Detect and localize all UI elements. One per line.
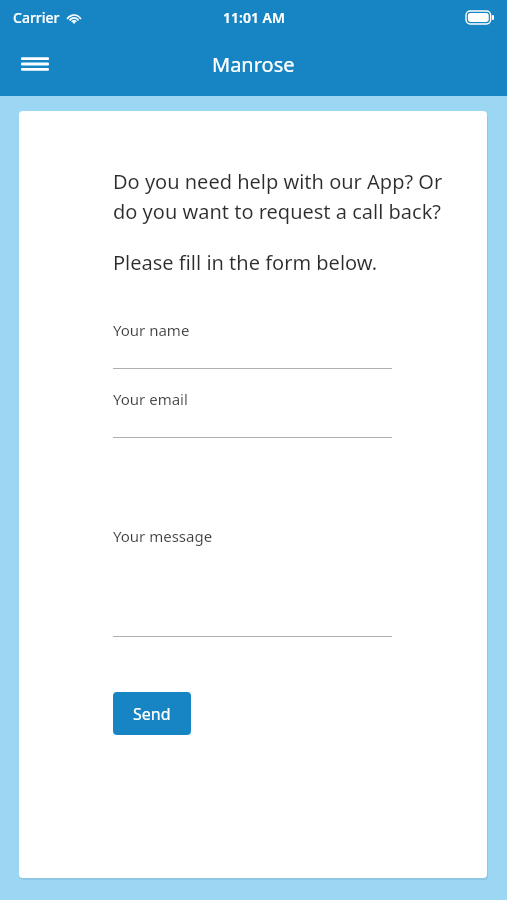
staticText: Your email [113,389,188,409]
staticText: Do you need help with our App? Or do you… [113,168,469,225]
button[interactable]: Your message [19,526,487,637]
staticText: Your message [113,526,213,546]
button[interactable]: Send [113,692,191,735]
staticText: Please fill in the form below. [113,249,378,276]
button[interactable]: Open navigation menu [12,41,58,87]
staticText: Carrier [13,8,60,27]
button[interactable]: Your name [19,320,487,369]
staticText: Manrose [212,51,295,78]
staticText: Send [133,703,171,725]
staticText: Your name [113,320,190,340]
staticText: 11:01 AM [223,8,285,27]
button[interactable]: Your email [19,389,487,438]
